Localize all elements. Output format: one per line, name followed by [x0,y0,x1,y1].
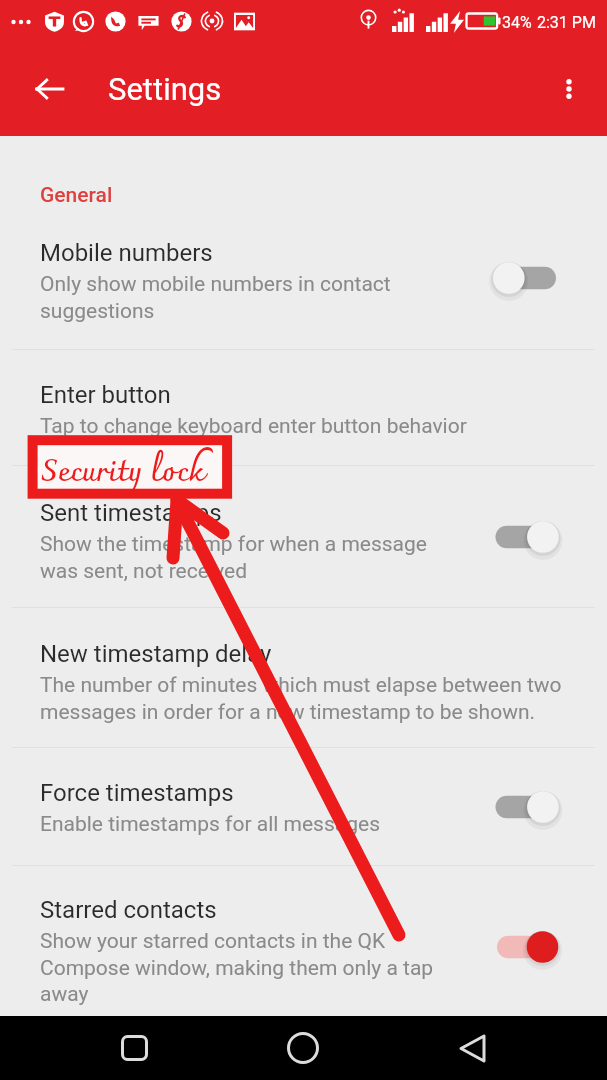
button[interactable]: Enter button [0,365,607,475]
button[interactable]: Recents [101,1016,168,1080]
staticText: 34% [502,13,532,32]
staticText: Mobile numbers [40,239,213,267]
button[interactable]: Back [439,1016,505,1080]
button[interactable]: Back [23,63,75,115]
button[interactable]: New timestamp delay [0,624,607,734]
staticText: 2:31 PM [537,13,596,32]
staticText: Settings [108,71,222,107]
staticText: Security lock [41,445,205,502]
button[interactable]: More options [546,66,592,112]
staticText: Show your starred contacts in the QK Com… [40,929,450,1006]
staticText: Tap to change keyboard enter button beha… [40,414,467,439]
staticText: Starred contacts [40,896,217,924]
staticText: Show the timestamp for when a message wa… [40,532,450,583]
button[interactable]: Toggle on [480,917,580,977]
button[interactable]: Force timestamps [0,763,607,873]
button[interactable]: Toggle on [480,777,580,837]
button[interactable]: Toggle on [480,507,580,567]
button[interactable]: Mobile numbers [0,223,607,333]
button[interactable]: Sent timestamps [0,483,607,593]
staticText: General [40,183,113,208]
staticText: Sent timestamps [40,499,222,527]
staticText: The number of minutes which must elapse … [40,673,580,724]
staticText: Enable timestamps for all messages [40,812,380,837]
staticText: Only show mobile numbers in contact sugg… [40,272,450,323]
button[interactable]: Toggle off [480,248,580,308]
button[interactable]: Home [270,1016,336,1080]
staticText: Enter button [40,381,171,409]
button[interactable]: Starred contacts [0,880,607,990]
staticText: Force timestamps [40,779,234,807]
staticText: New timestamp delay [40,640,272,668]
